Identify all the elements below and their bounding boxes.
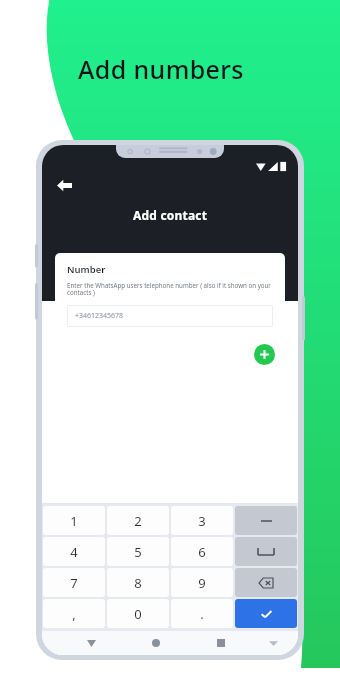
button[interactable]: Space: [235, 537, 297, 566]
staticText: Add numbers: [78, 52, 244, 86]
button[interactable]: .: [171, 599, 233, 628]
staticText: 2: [134, 512, 142, 530]
staticText: 6: [198, 543, 206, 561]
button[interactable]: 8: [107, 568, 169, 597]
staticText: 3: [198, 512, 206, 530]
button[interactable]: 6: [171, 537, 233, 566]
button[interactable]: Home: [146, 633, 166, 653]
button[interactable]: ,: [43, 599, 105, 628]
staticText: 1: [70, 512, 78, 530]
button[interactable]: Add number: [254, 344, 275, 365]
staticText: Enter the WhatsApp users telephone numbe…: [67, 281, 273, 297]
button[interactable]: Dash: [235, 506, 297, 535]
button[interactable]: 5: [107, 537, 169, 566]
staticText: .: [200, 605, 204, 623]
staticText: 5: [134, 543, 142, 561]
staticText: 9: [198, 574, 206, 592]
button[interactable]: Back: [81, 633, 101, 653]
button[interactable]: 4: [43, 537, 105, 566]
staticText: 4: [70, 543, 78, 561]
button[interactable]: Recents: [211, 633, 231, 653]
button[interactable]: 0: [107, 599, 169, 628]
staticText: Number: [67, 263, 106, 276]
button[interactable]: Enter: [235, 599, 297, 628]
staticText: ,: [72, 605, 76, 623]
button[interactable]: 2: [107, 506, 169, 535]
button[interactable]: Hide keyboard: [264, 634, 282, 652]
button[interactable]: 9: [171, 568, 233, 597]
button[interactable]: 7: [43, 568, 105, 597]
staticText: 7: [70, 574, 78, 592]
staticText: 8: [134, 574, 142, 592]
button[interactable]: +34612345678: [67, 305, 273, 327]
button[interactable]: Back: [50, 171, 78, 199]
staticText: +34612345678: [75, 311, 124, 321]
staticText: Add contact: [133, 207, 208, 223]
button[interactable]: 3: [171, 506, 233, 535]
button[interactable]: 1: [43, 506, 105, 535]
button[interactable]: Number: [55, 253, 285, 367]
staticText: 0: [134, 605, 142, 623]
button[interactable]: Backspace: [235, 568, 297, 597]
